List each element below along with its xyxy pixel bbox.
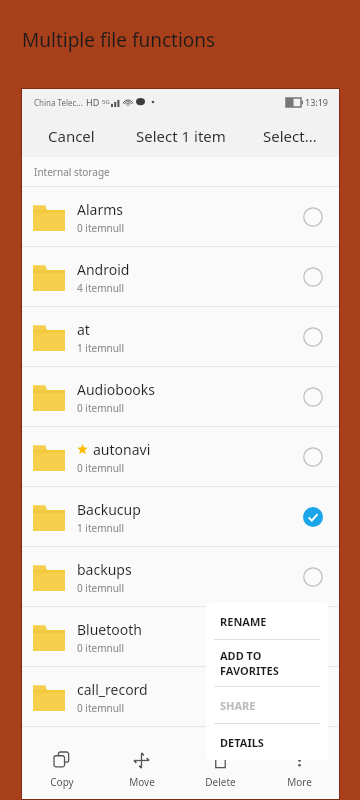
button[interactable]: Copy	[22, 741, 102, 799]
button[interactable]: Android	[22, 247, 339, 307]
button[interactable]: at	[22, 307, 339, 367]
button[interactable]: Select Alarms	[291, 195, 335, 239]
button[interactable]: Delete	[181, 741, 260, 799]
staticText: 0 itemnull	[77, 401, 125, 415]
staticText: Delete	[205, 775, 236, 789]
button[interactable]: Cancel	[22, 115, 121, 157]
button[interactable]: SHARE	[206, 687, 328, 723]
staticText: 4 itemnull	[77, 281, 125, 295]
button[interactable]: Select Audiobooks	[291, 375, 335, 419]
button[interactable]: RENAME	[206, 603, 328, 639]
staticText: 0 itemnull	[77, 581, 125, 595]
staticText: Move	[129, 775, 155, 789]
staticText: 5G	[102, 98, 110, 106]
button[interactable]: More	[260, 741, 339, 799]
button[interactable]: Select at	[291, 315, 335, 359]
staticText: RENAME	[220, 614, 267, 629]
button[interactable]: Select Bluetooth	[291, 615, 335, 659]
staticText: Backucup	[77, 500, 141, 519]
staticText: Copy	[50, 775, 74, 789]
button[interactable]: Backucup	[22, 487, 339, 547]
staticText: Internal storage	[34, 165, 110, 179]
staticText: call_record	[77, 680, 148, 699]
staticText: backups	[77, 560, 132, 579]
staticText: Multiple file functions	[22, 27, 216, 53]
staticText: 13:19	[305, 96, 329, 108]
staticText: HD	[86, 96, 100, 108]
staticText: Select...	[263, 126, 317, 146]
staticText: 0 itemnull	[77, 701, 125, 715]
staticText: Select 1 item	[136, 126, 226, 146]
staticText: Android	[77, 260, 130, 279]
button[interactable]: Alarms	[22, 187, 339, 247]
staticText: 0 itemnull	[77, 641, 125, 655]
button[interactable]: ADD TO FAVORITES	[206, 640, 328, 686]
button[interactable]: autonavi	[22, 427, 339, 487]
staticText: More	[287, 775, 312, 789]
staticText: DETAILS	[220, 735, 264, 750]
button[interactable]: Select Android	[291, 255, 335, 299]
staticText: 0 itemnull	[77, 461, 125, 475]
button[interactable]: Select autonavi	[291, 435, 335, 479]
staticText: Bluetooth	[77, 620, 142, 639]
button[interactable]: Move	[102, 741, 181, 799]
staticText: China Telec...	[34, 97, 83, 108]
staticText: 1 itemnull	[77, 521, 125, 535]
button[interactable]: Select backups	[291, 555, 335, 599]
staticText: SHARE	[220, 698, 256, 713]
button[interactable]: Select...	[240, 115, 339, 157]
button[interactable]: Select Backucup	[291, 495, 335, 539]
staticText: ADD TO FAVORITES	[220, 648, 279, 678]
staticText: Alarms	[77, 200, 123, 219]
button[interactable]: Audiobooks	[22, 367, 339, 427]
button[interactable]: Select call_record	[291, 675, 335, 719]
button[interactable]: Bluetooth	[22, 607, 339, 667]
button[interactable]: call_record	[22, 667, 339, 727]
button[interactable]: DETAILS	[206, 724, 328, 760]
staticText: 1 itemnull	[77, 341, 125, 355]
staticText: autonavi	[93, 440, 151, 459]
button[interactable]: backups	[22, 547, 339, 607]
staticText: at	[77, 320, 90, 339]
staticText: Cancel	[48, 126, 95, 146]
staticText: 0 itemnull	[77, 221, 125, 235]
staticText: Audiobooks	[77, 380, 156, 399]
